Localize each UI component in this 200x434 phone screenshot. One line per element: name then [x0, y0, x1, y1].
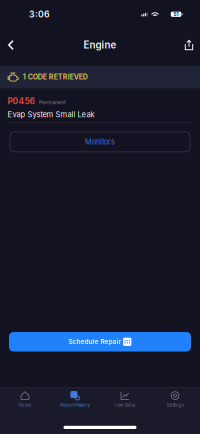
- button[interactable]: Settings: [150, 387, 200, 410]
- staticText: Schedule Repair: [68, 338, 120, 346]
- staticText: Home: [18, 402, 31, 408]
- staticText: Evap System Small Leak: [7, 110, 94, 119]
- button[interactable]: Back: [0, 34, 22, 56]
- staticText: Live Data: [114, 402, 135, 408]
- staticText: Permanent: [39, 99, 66, 106]
- button[interactable]: Report History: [50, 387, 100, 410]
- staticText: Monitors: [85, 137, 115, 146]
- button[interactable]: Share: [178, 34, 200, 56]
- staticText: Settings: [166, 402, 183, 408]
- button[interactable]: Schedule Repair: [9, 332, 191, 351]
- staticText: P0456: [7, 96, 34, 106]
- staticText: Engine: [83, 39, 116, 51]
- staticText: 51: [174, 11, 179, 17]
- button[interactable]: Live Data: [100, 387, 150, 410]
- staticText: 1 CODE RETRIEVED: [23, 73, 88, 81]
- staticText: 3:06: [29, 9, 50, 19]
- staticText: Report History: [59, 402, 90, 408]
- button[interactable]: Monitors: [10, 132, 190, 152]
- button[interactable]: Home: [0, 387, 50, 410]
